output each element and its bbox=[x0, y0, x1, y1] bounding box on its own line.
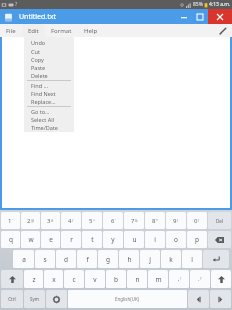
button[interactable]: k bbox=[161, 250, 181, 268]
button[interactable]: Select All bbox=[25, 115, 73, 123]
staticText: ! bbox=[180, 276, 181, 281]
button[interactable]: o bbox=[166, 231, 186, 248]
staticText: ? bbox=[15, 1, 18, 8]
staticText: b bbox=[114, 275, 118, 284]
button[interactable]: Find ... bbox=[25, 81, 73, 89]
button[interactable]: s bbox=[35, 250, 55, 268]
button[interactable]: Undo bbox=[25, 38, 73, 46]
button[interactable]: b bbox=[106, 270, 126, 288]
button[interactable]: p bbox=[187, 231, 207, 248]
button[interactable]: w bbox=[21, 231, 40, 248]
button[interactable]: File bbox=[0, 24, 22, 37]
button[interactable]: j bbox=[140, 250, 160, 268]
button[interactable]: d bbox=[56, 250, 76, 268]
button[interactable]: Close bbox=[208, 9, 232, 24]
button[interactable]: Enter bbox=[203, 250, 229, 268]
button[interactable]: n bbox=[127, 270, 147, 288]
button[interactable]: y bbox=[103, 231, 123, 248]
button[interactable]: Copy bbox=[25, 55, 73, 63]
staticText: File bbox=[6, 27, 16, 35]
staticText: Edit bbox=[28, 27, 39, 35]
staticText: g bbox=[106, 255, 110, 264]
button[interactable]: 3 bbox=[41, 212, 60, 229]
staticText: l bbox=[191, 255, 193, 264]
button[interactable]: 7 bbox=[124, 212, 144, 229]
staticText: j bbox=[149, 255, 151, 264]
staticText: z bbox=[32, 275, 36, 284]
staticText: Delete bbox=[31, 72, 48, 79]
staticText: p bbox=[195, 235, 199, 244]
button[interactable]: e bbox=[41, 231, 60, 248]
button[interactable]: Cut bbox=[25, 47, 73, 55]
staticText: m bbox=[155, 275, 162, 284]
staticText: Paste bbox=[31, 64, 46, 71]
staticText: ) bbox=[198, 218, 200, 223]
button[interactable]: 8 bbox=[145, 212, 165, 229]
button[interactable]: Replace... bbox=[25, 97, 73, 105]
button[interactable]: Backspace bbox=[208, 231, 231, 248]
staticText: Select All bbox=[31, 116, 55, 123]
button[interactable]: , bbox=[169, 270, 189, 288]
button[interactable]: Edit bbox=[218, 26, 228, 36]
staticText: & bbox=[135, 218, 138, 223]
staticText: t bbox=[91, 235, 94, 244]
button[interactable]: Go to... bbox=[25, 107, 73, 115]
button[interactable]: 2 bbox=[21, 212, 40, 229]
button[interactable]: English(UK) bbox=[68, 290, 187, 308]
button[interactable]: f bbox=[77, 250, 97, 268]
button[interactable]: Time/Date bbox=[25, 123, 73, 131]
button[interactable]: Shift bbox=[1, 270, 23, 288]
staticText: f bbox=[86, 255, 89, 264]
button[interactable]: v bbox=[85, 270, 105, 288]
staticText: i bbox=[154, 235, 156, 244]
button[interactable]: . bbox=[190, 270, 210, 288]
staticText: w bbox=[28, 235, 34, 244]
button[interactable]: Shift bbox=[211, 270, 231, 288]
button[interactable]: i bbox=[145, 231, 165, 248]
button[interactable]: Ctrl bbox=[1, 290, 23, 308]
staticText: . bbox=[198, 275, 200, 283]
staticText: Sym bbox=[30, 296, 39, 302]
button[interactable]: Format bbox=[45, 24, 78, 37]
button[interactable]: m bbox=[148, 270, 168, 288]
button[interactable]: Del bbox=[208, 212, 231, 229]
button[interactable]: t bbox=[82, 231, 102, 248]
button[interactable]: Paste bbox=[25, 63, 73, 71]
button[interactable]: z bbox=[24, 270, 43, 288]
staticText: 4 bbox=[68, 217, 72, 225]
button[interactable]: Settings bbox=[46, 290, 67, 308]
button[interactable]: r bbox=[61, 231, 81, 248]
button[interactable]: 1 bbox=[1, 212, 20, 229]
button[interactable]: 5 bbox=[82, 212, 102, 229]
button[interactable]: Sym bbox=[24, 290, 45, 308]
button[interactable]: x bbox=[44, 270, 63, 288]
staticText: @ bbox=[31, 218, 35, 223]
button[interactable]: Find Next bbox=[25, 89, 73, 97]
button[interactable]: Maximize bbox=[192, 9, 208, 24]
button[interactable]: q bbox=[1, 231, 20, 248]
staticText: a bbox=[22, 255, 26, 264]
button[interactable]: h bbox=[119, 250, 139, 268]
staticText: Ctrl bbox=[8, 296, 16, 302]
button[interactable]: l bbox=[182, 250, 202, 268]
button[interactable]: Delete bbox=[25, 71, 73, 79]
staticText: c bbox=[72, 275, 76, 284]
staticText: Format bbox=[51, 27, 72, 35]
button[interactable]: 4 bbox=[61, 212, 81, 229]
button[interactable]: g bbox=[98, 250, 118, 268]
button[interactable]: Edit bbox=[22, 24, 45, 37]
button[interactable]: Left bbox=[188, 290, 209, 308]
staticText: e bbox=[49, 235, 53, 244]
button[interactable]: 0 bbox=[187, 212, 207, 229]
button[interactable]: Minimize bbox=[176, 9, 192, 24]
staticText: Find Next bbox=[31, 90, 56, 97]
button[interactable]: u bbox=[124, 231, 144, 248]
button[interactable]: a bbox=[13, 250, 34, 268]
button[interactable]: c bbox=[64, 270, 84, 288]
button[interactable]: Right bbox=[210, 290, 231, 308]
staticText: # bbox=[51, 218, 54, 223]
button[interactable]: 9 bbox=[166, 212, 186, 229]
staticText: 8 bbox=[152, 217, 156, 225]
button[interactable]: 6 bbox=[103, 212, 123, 229]
button[interactable]: Help bbox=[78, 24, 104, 37]
